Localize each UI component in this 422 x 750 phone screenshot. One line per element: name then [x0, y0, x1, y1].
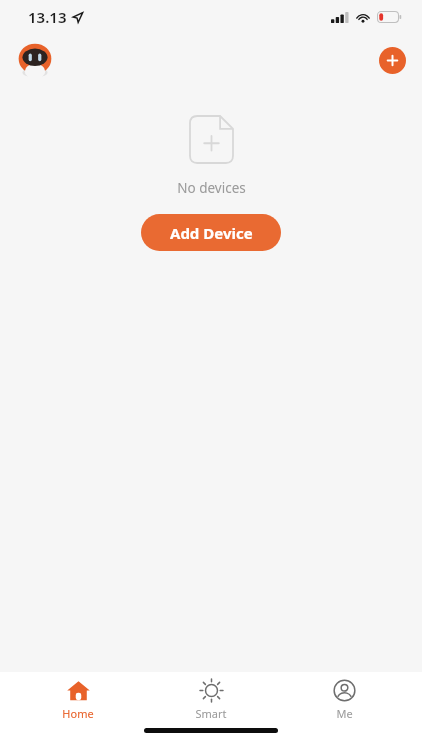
staticText: 13.13 [28, 7, 67, 27]
button[interactable]: App logo [14, 39, 56, 81]
button[interactable]: Add [379, 47, 406, 74]
button[interactable]: Add Device [141, 214, 281, 251]
staticText: Smart [195, 706, 227, 721]
button[interactable]: Smart [156, 679, 266, 721]
button[interactable]: Home [23, 679, 133, 721]
staticText: No devices [177, 179, 246, 197]
staticText: Home [62, 706, 94, 721]
staticText: Add Device [170, 223, 253, 243]
staticText: Me [336, 706, 353, 721]
button[interactable]: Me [289, 679, 399, 721]
